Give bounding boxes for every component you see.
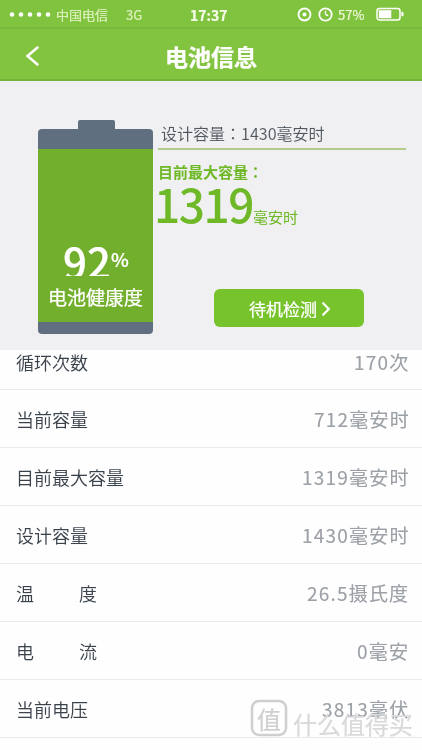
staticText: 57%: [338, 5, 365, 24]
button[interactable]: 目前最大容量: [0, 448, 422, 506]
staticText: 92: [63, 230, 111, 276]
staticText: 目前最大容量: [16, 464, 124, 490]
staticText: 17:37: [190, 5, 228, 25]
staticText: 中国电信: [56, 5, 109, 24]
staticText: 712毫安时: [314, 405, 410, 433]
staticText: 值: [257, 701, 281, 736]
button[interactable]: [10, 34, 54, 78]
staticText: 温 度: [16, 580, 97, 606]
staticText: 循环次数: [16, 349, 88, 375]
staticText: 1319: [154, 170, 253, 237]
staticText: 设计容量: [16, 522, 88, 548]
staticText: 电 流: [16, 638, 97, 664]
staticText: 电池信息: [165, 39, 257, 72]
staticText: 设计容量：1430毫安时: [161, 121, 325, 144]
button[interactable]: 当前电压: [0, 680, 422, 738]
staticText: 当前电压: [16, 696, 88, 722]
staticText: 26.5摄氏度: [307, 579, 410, 607]
staticText: 当前容量: [16, 406, 88, 432]
staticText: 待机检测: [249, 296, 317, 321]
staticText: 毫安时: [253, 206, 299, 228]
staticText: %: [111, 245, 129, 273]
staticText: 目前最大容量：: [158, 161, 264, 183]
staticText: 1319毫安时: [302, 463, 410, 491]
staticText: 0毫安: [357, 637, 410, 665]
staticText: 3813毫伏: [322, 695, 410, 723]
button[interactable]: 设计容量: [0, 506, 422, 564]
staticText: 170次: [354, 348, 410, 376]
staticText: 电池健康度: [48, 283, 144, 307]
button[interactable]: 电 流: [0, 622, 422, 680]
staticText: 什么值得买: [293, 706, 413, 741]
button[interactable]: 待机检测: [214, 289, 364, 327]
button[interactable]: 循环次数: [0, 334, 422, 390]
button[interactable]: 当前容量: [0, 390, 422, 448]
staticText: 3G: [126, 5, 143, 24]
button[interactable]: 温 度: [0, 564, 422, 622]
staticText: 1430毫安时: [302, 521, 410, 549]
